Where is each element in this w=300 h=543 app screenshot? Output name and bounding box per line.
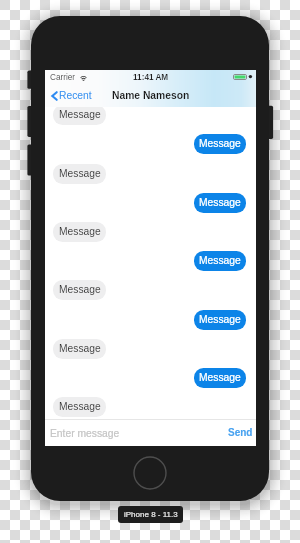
button[interactable]: Message bbox=[194, 368, 246, 388]
staticText: Message bbox=[199, 314, 241, 326]
staticText: Message bbox=[59, 109, 101, 121]
button[interactable]: Message bbox=[53, 222, 106, 242]
button[interactable]: Message bbox=[194, 251, 246, 271]
staticText: Message bbox=[59, 168, 101, 180]
staticText: iPhone 8 - 11.3 bbox=[124, 510, 178, 519]
staticText: Message bbox=[59, 284, 101, 296]
button[interactable]: Message bbox=[53, 339, 106, 359]
staticText: 11:41 AM bbox=[133, 73, 169, 82]
staticText: Carrier bbox=[50, 73, 76, 82]
button[interactable]: Message bbox=[194, 134, 246, 154]
staticText: Message bbox=[59, 401, 101, 413]
button[interactable]: iPhone 8 - 11.3 bbox=[118, 506, 183, 523]
staticText: Send bbox=[228, 427, 253, 438]
button[interactable]: Message bbox=[194, 193, 246, 213]
staticText: Enter message bbox=[50, 428, 120, 440]
button[interactable]: Enter message bbox=[50, 428, 120, 440]
button[interactable]: Message bbox=[53, 164, 106, 184]
button[interactable]: Message bbox=[53, 280, 106, 300]
staticText: Message bbox=[59, 226, 101, 238]
button[interactable]: Recent bbox=[51, 90, 92, 102]
staticText: Message bbox=[199, 138, 241, 150]
staticText: Name Nameson bbox=[112, 90, 190, 102]
staticText: Recent bbox=[59, 90, 92, 102]
button[interactable]: Message bbox=[53, 105, 106, 125]
button[interactable]: Message bbox=[194, 310, 246, 330]
staticText: Message bbox=[59, 343, 101, 355]
button[interactable]: Message bbox=[53, 397, 106, 417]
staticText: Message bbox=[199, 255, 241, 267]
staticText: Message bbox=[199, 372, 241, 384]
staticText: Message bbox=[199, 197, 241, 209]
button[interactable]: Home bbox=[133, 456, 167, 490]
button[interactable]: Send bbox=[228, 427, 253, 438]
